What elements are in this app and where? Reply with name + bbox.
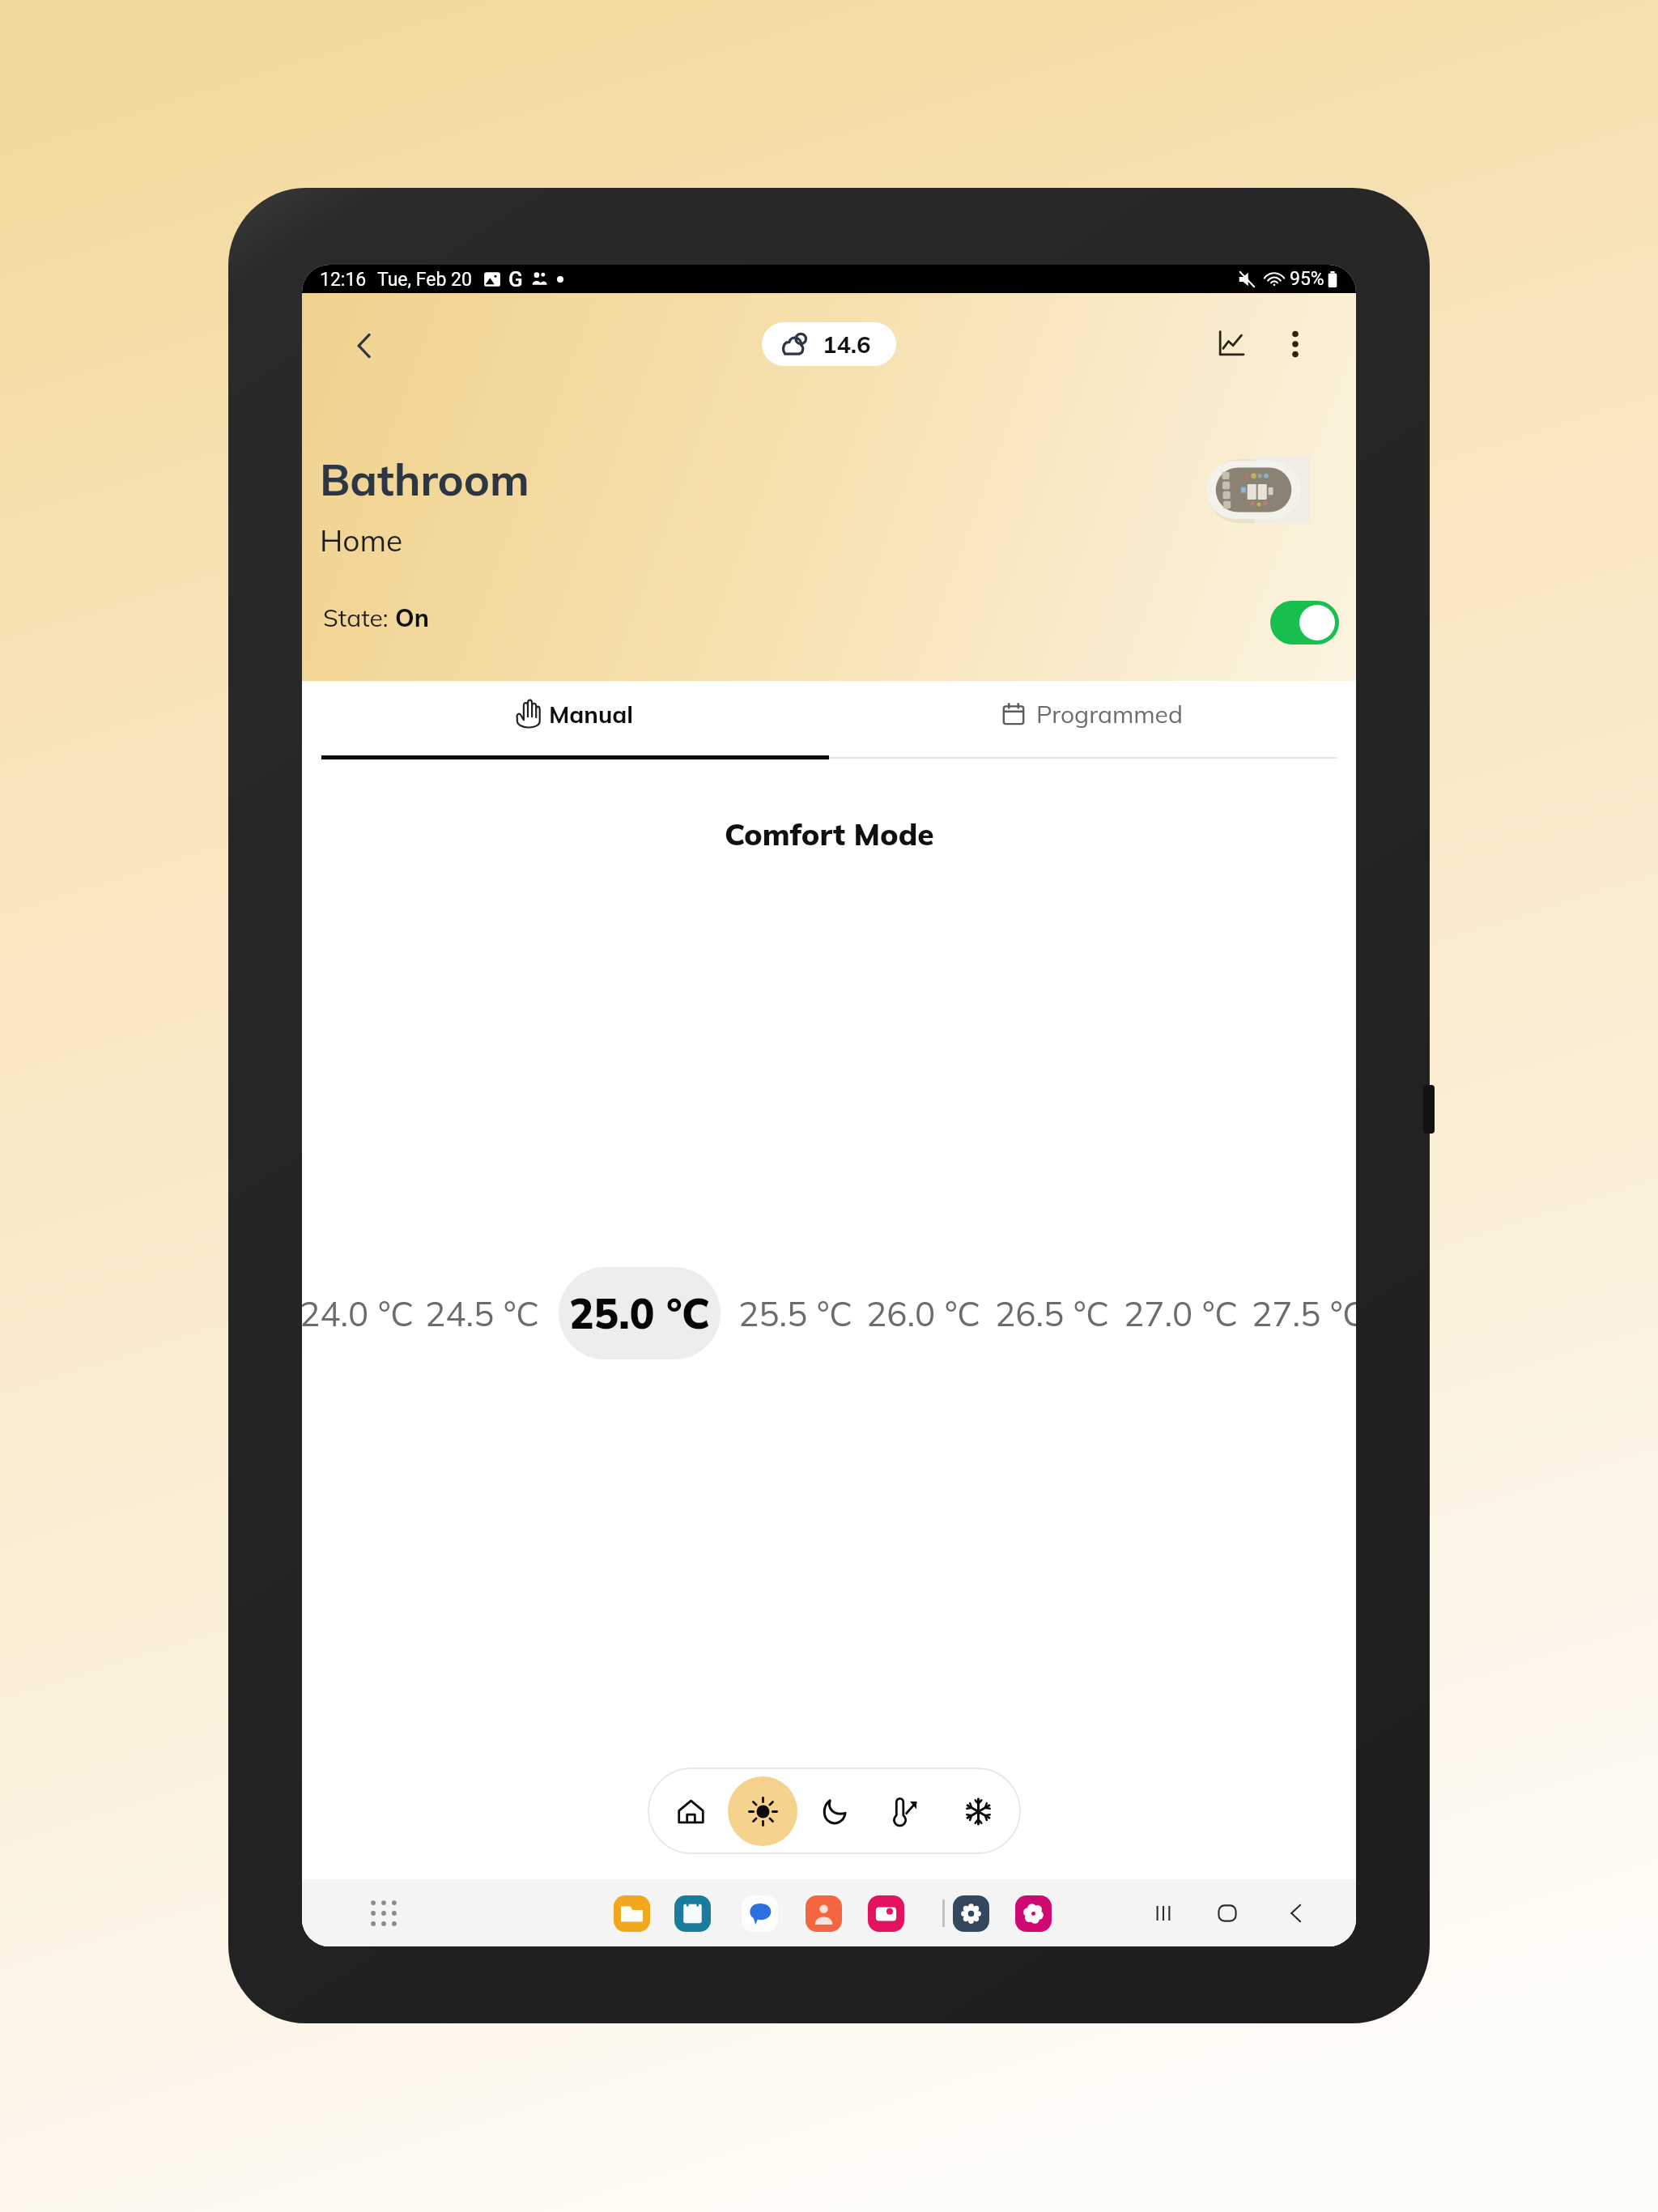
button[interactable]: 26.0 [835, 1267, 1013, 1359]
staticText: °C [945, 1292, 981, 1335]
staticText: 25.0 [569, 1287, 655, 1339]
staticText: On [395, 602, 429, 633]
staticText: °C [1330, 1292, 1356, 1335]
staticText: 12:16 [320, 269, 367, 291]
staticText: Home [320, 521, 403, 559]
staticText: Manual [549, 700, 634, 729]
button[interactable]: More options [1273, 322, 1317, 366]
staticText: °C [1073, 1292, 1110, 1335]
button[interactable]: 24.5 [393, 1267, 572, 1359]
staticText: 24.5 [425, 1292, 495, 1335]
staticText: 27.5 [1252, 1292, 1321, 1335]
button[interactable]: Statistics [1209, 321, 1252, 365]
button[interactable]: Eco mode [871, 1776, 941, 1846]
staticText: 95% [1290, 268, 1324, 290]
staticText: °C [504, 1292, 540, 1335]
staticText: °C [1202, 1292, 1239, 1335]
button[interactable]: Settings [949, 1891, 993, 1935]
button[interactable]: Messages [738, 1891, 781, 1935]
staticText: °C [666, 1287, 710, 1339]
button[interactable]: 24.0 [302, 1267, 446, 1359]
staticText: °C [817, 1292, 853, 1335]
staticText: Programmed [1036, 699, 1183, 730]
button[interactable]: 14.6 [762, 322, 896, 366]
staticText: 26.0 [866, 1292, 936, 1335]
button[interactable]: Comfort mode [728, 1776, 797, 1846]
staticText: 27.0 [1124, 1292, 1193, 1335]
button[interactable]: Files [610, 1891, 653, 1935]
staticText: State: [323, 602, 395, 633]
button[interactable]: Back [1273, 1891, 1319, 1936]
button[interactable]: 26.5 [963, 1267, 1141, 1359]
button[interactable]: 25.0 [551, 1267, 729, 1359]
button[interactable]: 27.0 [1092, 1267, 1270, 1359]
button[interactable]: Contacts [801, 1891, 845, 1935]
button[interactable]: Calendar [670, 1891, 714, 1935]
button[interactable]: Home [1205, 1891, 1250, 1936]
button[interactable]: Recent apps [1141, 1891, 1186, 1936]
staticText: 14.6 [823, 330, 871, 359]
staticText: 25.5 [738, 1292, 808, 1335]
button[interactable]: Power toggle [1270, 601, 1339, 644]
button[interactable]: Manual [302, 681, 829, 760]
staticText: Comfort Mode [725, 815, 934, 853]
button[interactable]: Frost protection [943, 1776, 1013, 1846]
button[interactable]: All apps [360, 1890, 407, 1937]
button[interactable]: Gallery [1011, 1891, 1055, 1935]
staticText: 24.0 [302, 1292, 369, 1335]
button[interactable]: 25.5 [707, 1267, 885, 1359]
button[interactable]: 27.5 [1220, 1267, 1356, 1359]
button[interactable]: Auto mode [656, 1776, 725, 1846]
staticText: °C [378, 1292, 414, 1335]
staticText: Tue, Feb 20 [377, 269, 472, 291]
staticText: Bathroom [320, 452, 529, 507]
button[interactable]: Night mode [800, 1776, 869, 1846]
staticText: 26.5 [995, 1292, 1065, 1335]
button[interactable]: Back [341, 322, 388, 369]
button[interactable]: Camera [864, 1891, 908, 1935]
staticText: G [508, 267, 523, 291]
button[interactable]: Programmed [829, 681, 1356, 760]
